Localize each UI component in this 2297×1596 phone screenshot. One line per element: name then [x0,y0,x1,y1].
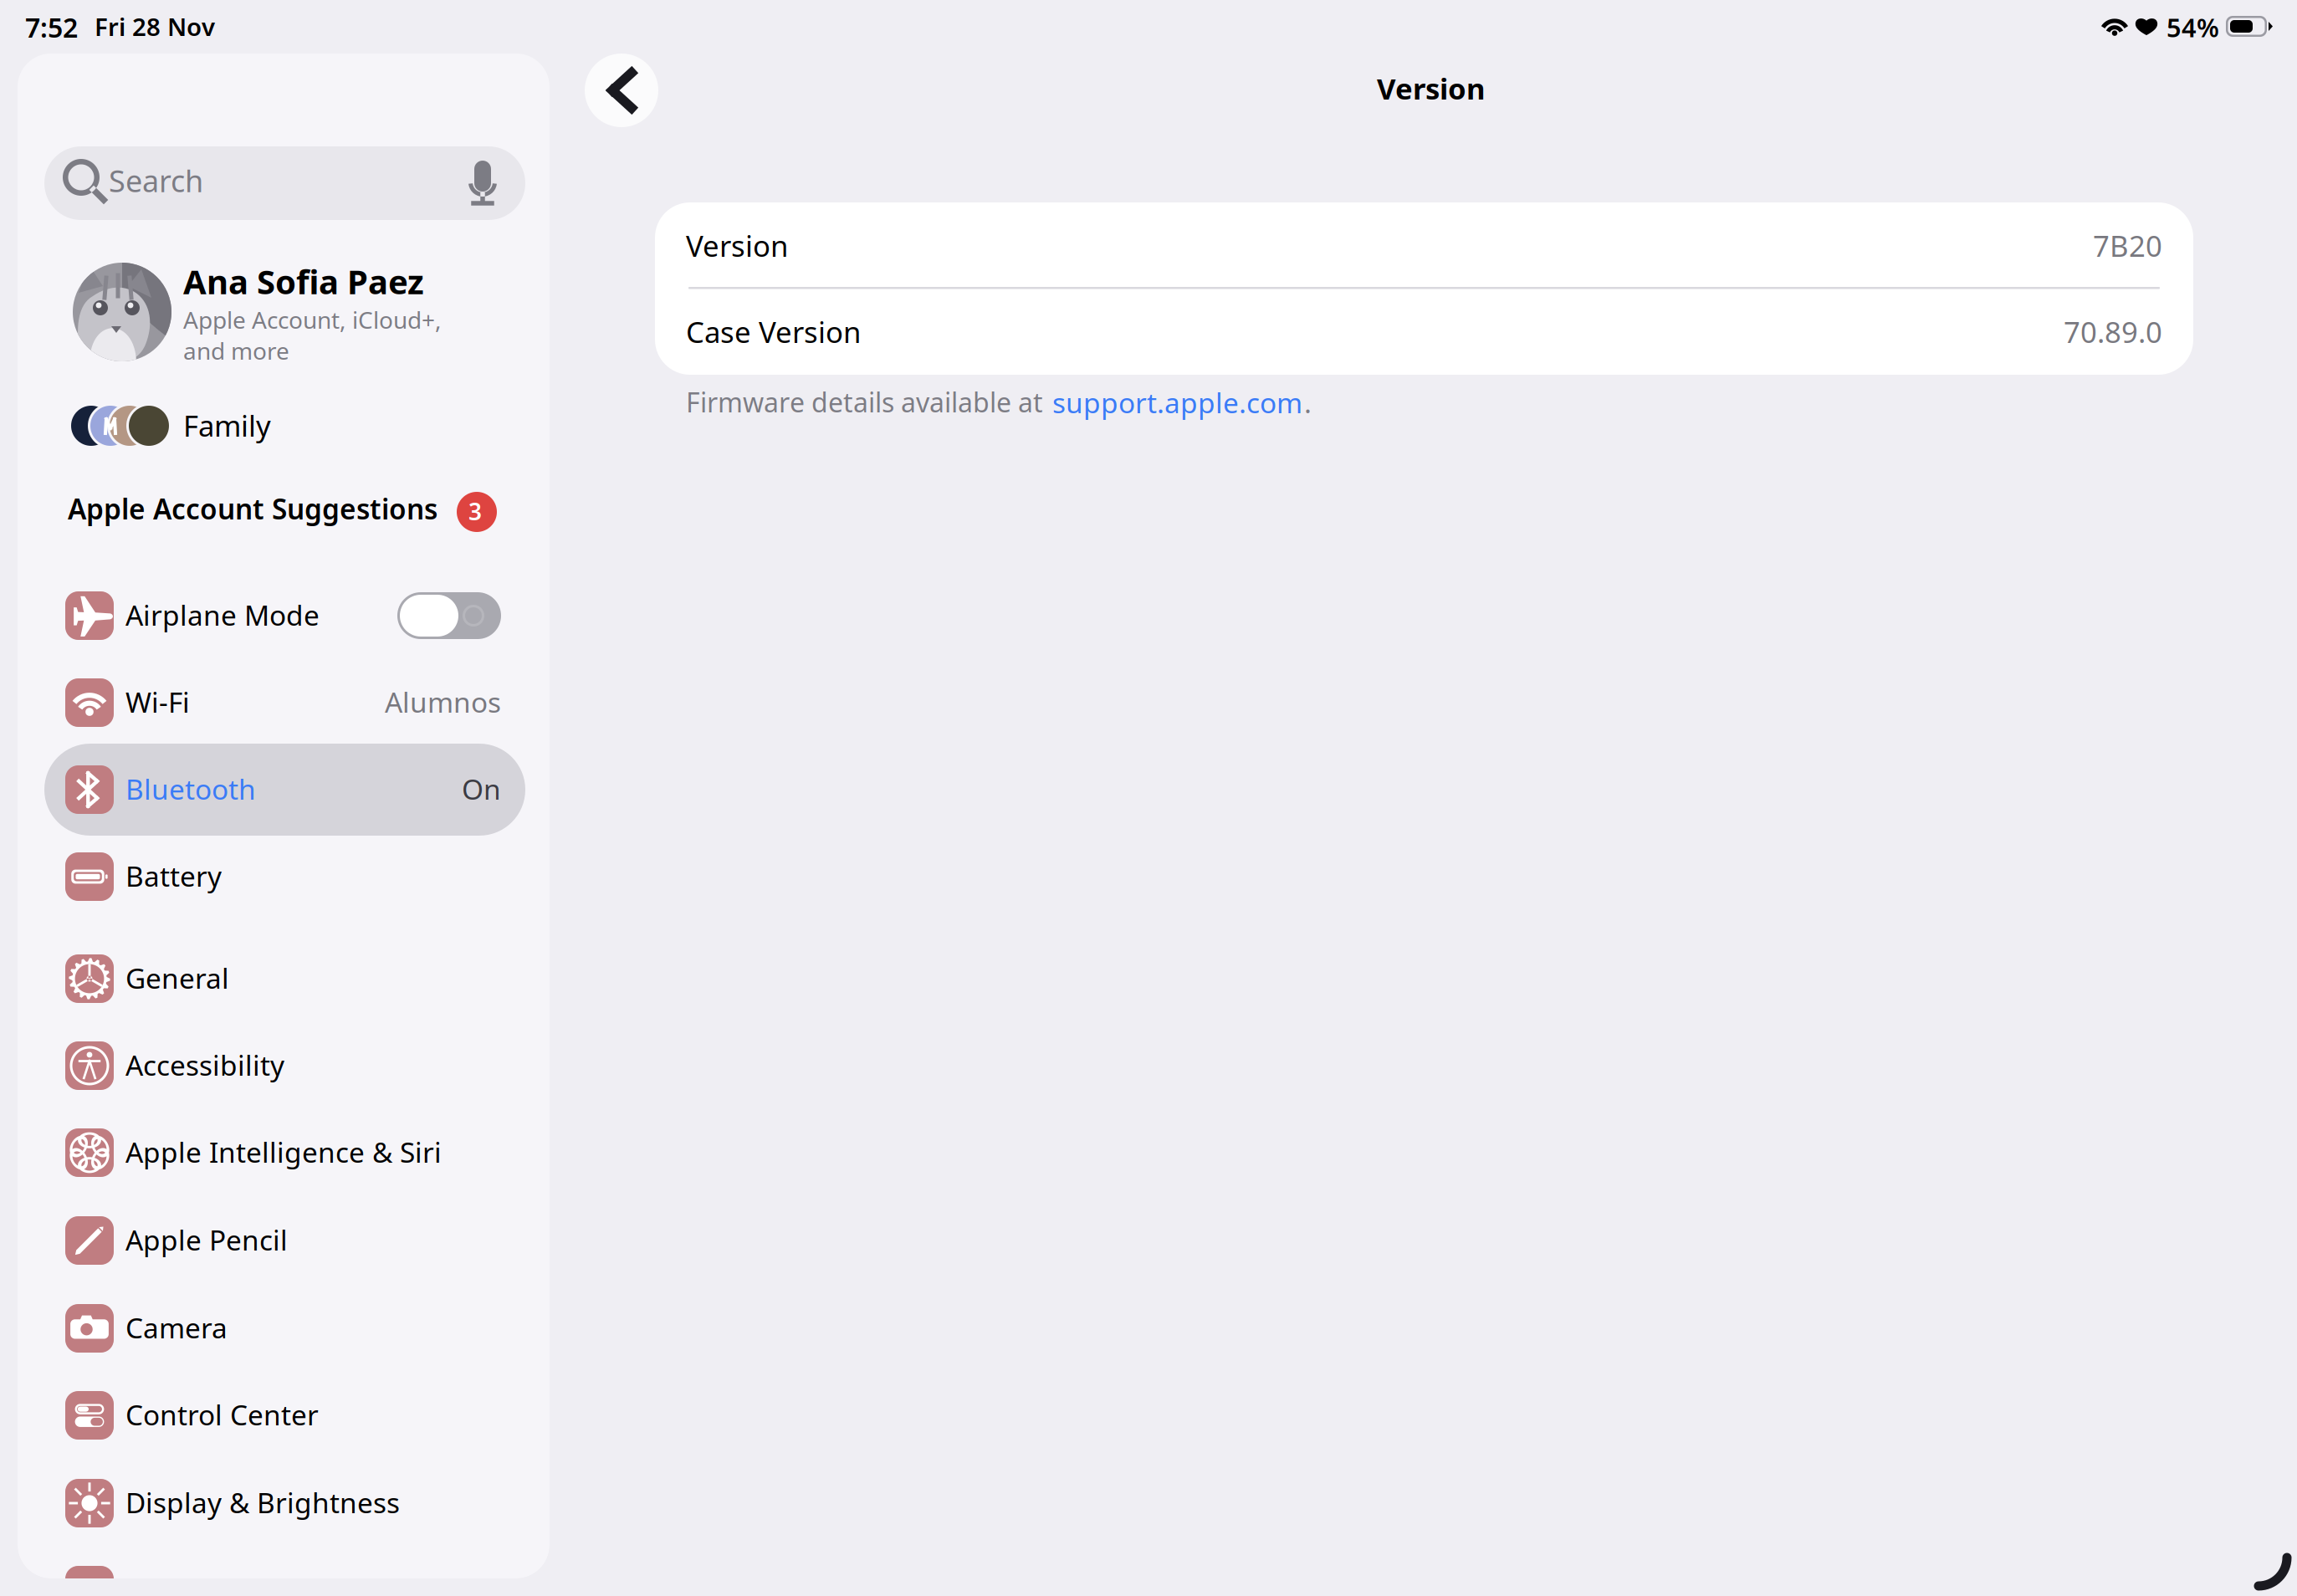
button[interactable]: Control Center [0,0,2297,1596]
staticText: On [462,770,501,807]
staticText: 7:52 [25,9,78,45]
button[interactable]: Search [0,0,2297,1596]
staticText: Display & Brightness [125,1484,400,1521]
button[interactable]: Airplane Mode [0,0,2297,1596]
button[interactable] [0,0,2297,1596]
button[interactable]: General [0,0,2297,1596]
staticText: support.apple.com [1052,384,1302,421]
button[interactable]: Family [0,0,2297,1596]
staticText: Battery [125,857,222,894]
staticText: Alumnos [385,683,501,720]
staticText: Camera [125,1309,228,1346]
staticText: . [1304,384,1312,421]
button[interactable]: Apple Pencil [0,0,2297,1596]
staticText: Control Center [125,1396,319,1433]
staticText: 3 [468,496,482,527]
staticText: Ana Sofia Paez [183,259,424,303]
staticText: Bluetooth [125,770,256,807]
button[interactable]: Display & Brightness [0,0,2297,1596]
staticText: 7B20 [2093,226,2162,265]
button[interactable]: Apple Intelligence & Siri [0,0,2297,1596]
staticText: Wi-Fi [125,683,190,720]
button[interactable]: Bluetooth [0,0,2297,1596]
staticText: Apple Intelligence & Siri [125,1133,442,1170]
button[interactable]: Battery [0,0,2297,1596]
button[interactable]: Back [0,0,2297,1596]
staticText: Family [183,406,271,445]
staticText: and more [183,335,289,366]
button[interactable]: Airplane Mode [0,0,2297,1596]
button[interactable]: Apple Account Suggestions [0,0,2297,1596]
staticText: Case Version [686,312,861,351]
staticText: Fri 28 Nov [95,10,215,43]
staticText: Version [686,226,788,265]
staticText: Accessibility [125,1046,284,1083]
staticText: Search [109,161,203,201]
button[interactable]: Ana Sofia Paez [0,0,258,99]
staticText: General [125,959,229,996]
button[interactable]: Camera [0,0,2297,1596]
staticText: Airplane Mode [125,596,320,633]
staticText: Apple Account Suggestions [68,490,437,527]
staticText: Firmware details available at [686,384,1043,420]
button[interactable]: Accessibility [0,0,2297,1596]
staticText: Version [1377,69,1486,107]
staticText: Apple Pencil [125,1221,288,1258]
staticText: Apple Account, iCloud+, [183,304,442,335]
button[interactable]: Wi-Fi [0,0,2297,1596]
staticText: 70.89.0 [2064,312,2162,351]
staticText: 54% [2167,10,2219,44]
